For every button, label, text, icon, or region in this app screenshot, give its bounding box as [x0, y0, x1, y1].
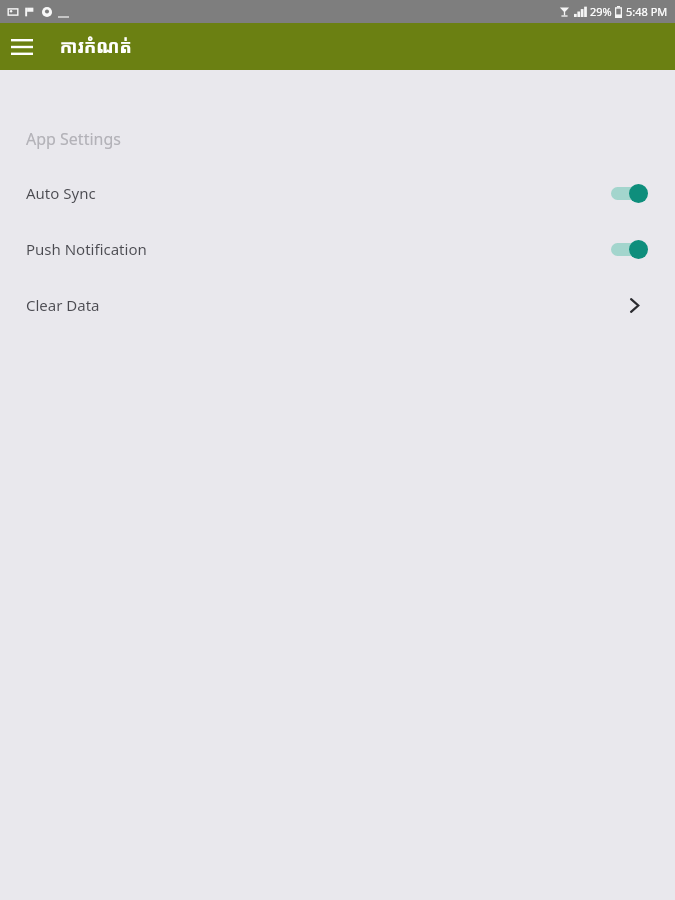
button[interactable]: Open navigation menu — [7, 32, 36, 61]
staticText: ការកំណត់ — [60, 34, 132, 59]
staticText: 5:48 PM — [626, 4, 668, 19]
button[interactable]: Auto Sync — [0, 175, 675, 211]
button[interactable]: Toggle on — [610, 182, 648, 204]
staticText: Push Notification — [26, 239, 610, 259]
staticText: 29% — [590, 4, 612, 19]
staticText: Clear Data — [26, 295, 623, 315]
button[interactable]: Toggle on — [610, 238, 648, 260]
staticText: App Settings — [26, 128, 121, 150]
button[interactable]: Clear Data — [0, 287, 675, 323]
button[interactable]: Push Notification — [0, 231, 675, 267]
staticText: Auto Sync — [26, 183, 610, 203]
other: Clear Data — [623, 294, 645, 316]
